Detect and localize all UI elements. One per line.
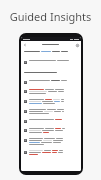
button[interactable] — [24, 59, 78, 65]
button[interactable] — [24, 127, 78, 134]
button[interactable] — [24, 98, 78, 105]
staticText: Guided Insights — [0, 9, 101, 24]
button[interactable] — [24, 149, 78, 156]
button[interactable] — [24, 88, 78, 95]
button[interactable]: Back — [23, 43, 27, 47]
button[interactable] — [24, 137, 78, 146]
button[interactable] — [24, 108, 78, 115]
button[interactable]: Info — [75, 43, 79, 47]
button[interactable] — [24, 79, 78, 85]
button[interactable] — [24, 118, 78, 124]
